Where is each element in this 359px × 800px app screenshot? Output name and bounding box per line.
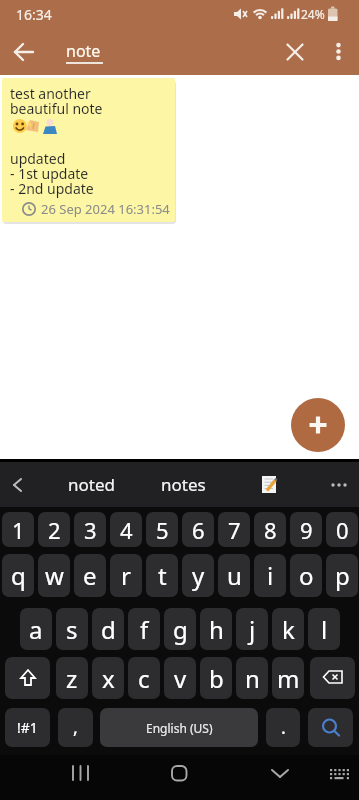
staticText: 4 <box>120 515 133 545</box>
staticText: r <box>121 559 131 592</box>
staticText: h <box>209 613 224 646</box>
button[interactable]: f <box>128 608 160 650</box>
button[interactable]: s <box>56 608 88 650</box>
staticText: 6 <box>192 515 205 545</box>
staticText: d <box>101 613 116 646</box>
staticText: l <box>321 613 328 646</box>
button[interactable]: 0 <box>326 512 358 547</box>
button[interactable] <box>275 32 315 72</box>
staticText: 7 <box>228 515 241 545</box>
button[interactable]: a <box>20 608 52 650</box>
button[interactable] <box>308 708 353 747</box>
button[interactable]: d <box>92 608 124 650</box>
staticText: q <box>11 559 26 592</box>
button[interactable]: h <box>200 608 232 650</box>
button[interactable]: 2 <box>38 512 70 547</box>
button[interactable]: l <box>308 608 340 650</box>
button[interactable]: , <box>58 708 93 747</box>
staticText: , <box>73 715 78 740</box>
staticText: English (US) <box>146 720 213 736</box>
staticText: g <box>173 613 188 646</box>
button[interactable] <box>291 398 345 452</box>
staticText: 5 <box>156 515 169 545</box>
staticText: 8 <box>264 515 277 545</box>
staticText: updated - 1st update - 2nd update <box>10 149 94 198</box>
staticText: s <box>66 613 78 646</box>
button[interactable]: notes <box>161 473 206 496</box>
button[interactable]: i <box>254 554 286 597</box>
staticText: a <box>29 613 43 646</box>
staticText: 9 <box>300 515 313 545</box>
staticText: 16:34 <box>16 5 52 24</box>
button[interactable]: j <box>236 608 268 650</box>
button[interactable]: n <box>236 657 268 699</box>
button[interactable]: 5 <box>146 512 178 547</box>
button[interactable] <box>239 755 359 800</box>
staticText: 3 <box>84 515 97 545</box>
staticText: 1 <box>12 515 25 545</box>
button[interactable]: p <box>326 554 358 597</box>
button[interactable]: m <box>272 657 304 699</box>
button[interactable]: t <box>146 554 178 597</box>
button[interactable] <box>0 755 119 800</box>
staticText: c <box>138 662 150 695</box>
button[interactable]: o <box>290 554 322 597</box>
staticText: 24% <box>301 6 325 22</box>
staticText: 2 <box>48 515 61 545</box>
button[interactable] <box>310 657 355 699</box>
staticText: 26 Sep 2024 16:31:54 <box>41 200 170 218</box>
button[interactable]: u <box>218 554 250 597</box>
button[interactable]: English (US) <box>100 708 258 747</box>
button[interactable]: 1 <box>2 512 34 547</box>
button[interactable]: q <box>2 554 34 597</box>
staticText: e <box>83 559 97 592</box>
button[interactable]: e <box>74 554 106 597</box>
button[interactable]: test another beautiful note <box>2 78 175 222</box>
button[interactable]: 4 <box>110 512 142 547</box>
button[interactable]: r <box>110 554 142 597</box>
button[interactable] <box>10 477 26 493</box>
button[interactable]: . <box>266 708 300 747</box>
staticText: t <box>158 559 167 592</box>
staticText: !#1 <box>17 718 38 737</box>
button[interactable] <box>5 657 50 699</box>
button[interactable]: 7 <box>218 512 250 547</box>
button[interactable] <box>0 32 40 72</box>
staticText: n <box>245 662 260 695</box>
staticText: w <box>45 559 64 592</box>
staticText: 0 <box>336 515 349 545</box>
staticText: i <box>267 559 274 592</box>
staticText: z <box>66 662 78 695</box>
button[interactable]: !#1 <box>5 708 50 747</box>
button[interactable] <box>261 476 279 494</box>
staticText: f <box>140 613 149 646</box>
staticText: u <box>227 559 242 592</box>
button[interactable]: c <box>128 657 160 699</box>
staticText: x <box>102 662 115 695</box>
button[interactable]: 3 <box>74 512 106 547</box>
button[interactable]: w <box>38 554 70 597</box>
staticText: v <box>174 662 187 695</box>
staticText: p <box>335 559 350 592</box>
button[interactable]: v <box>164 657 196 699</box>
button[interactable] <box>330 476 348 494</box>
staticText: test another beautiful note <box>10 84 103 118</box>
button[interactable]: g <box>164 608 196 650</box>
staticText: j <box>249 613 256 646</box>
staticText: m <box>277 662 300 695</box>
button[interactable] <box>322 35 355 68</box>
button[interactable]: y <box>182 554 214 597</box>
button[interactable]: b <box>200 657 232 699</box>
button[interactable]: k <box>272 608 304 650</box>
button[interactable]: noted <box>68 473 115 496</box>
button[interactable]: z <box>56 657 88 699</box>
button[interactable]: x <box>92 657 124 699</box>
button[interactable] <box>119 755 239 800</box>
staticText: . <box>281 715 286 740</box>
staticText: b <box>209 662 224 695</box>
staticText: y <box>192 559 205 592</box>
button[interactable]: 9 <box>290 512 322 547</box>
button[interactable]: 6 <box>182 512 214 547</box>
staticText: o <box>299 559 314 592</box>
button[interactable]: 8 <box>254 512 286 547</box>
